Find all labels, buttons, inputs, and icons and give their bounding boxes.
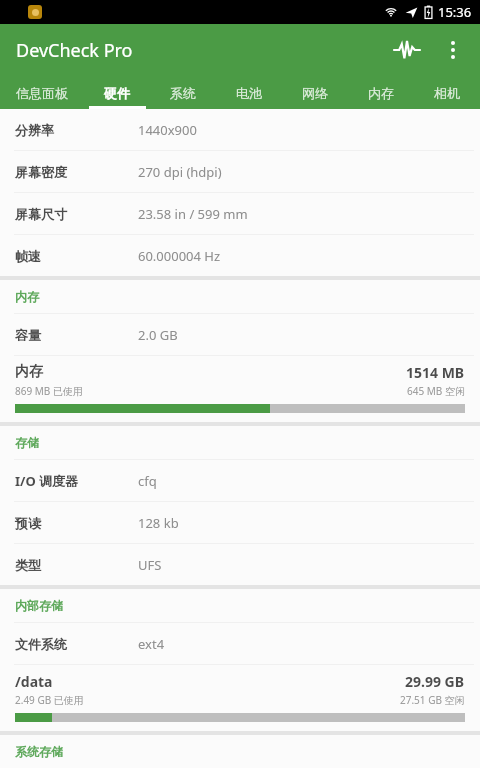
- staticText: 270 dpi (hdpi): [138, 163, 222, 181]
- staticText: 1514 MB: [406, 363, 465, 382]
- staticText: 屏幕尺寸: [15, 206, 67, 222]
- staticText: 内部存储: [15, 598, 63, 613]
- button[interactable]: 硬件: [84, 76, 150, 109]
- button[interactable]: 网络: [282, 76, 348, 109]
- staticText: 系统存储: [15, 744, 63, 759]
- staticText: 29.99 GB: [405, 672, 465, 691]
- staticText: 27.51 GB 空闲: [400, 693, 465, 707]
- button[interactable]: 帧速: [0, 235, 480, 276]
- staticText: ext4: [138, 635, 165, 653]
- button[interactable]: 容量: [0, 314, 480, 355]
- button[interactable]: 内存: [0, 356, 480, 422]
- button[interactable]: Monitor: [384, 27, 430, 73]
- staticText: 内存: [15, 289, 39, 304]
- staticText: 1440x900: [138, 121, 197, 139]
- staticText: 文件系统: [15, 636, 67, 652]
- staticText: 23.58 in / 599 mm: [138, 205, 248, 223]
- button[interactable]: 信息面板: [0, 76, 84, 109]
- staticText: 分辨率: [15, 122, 54, 138]
- button[interactable]: More options: [430, 27, 476, 73]
- staticText: 内存: [15, 363, 43, 381]
- staticText: /data: [15, 672, 53, 691]
- staticText: 预读: [15, 515, 41, 531]
- staticText: 电池: [236, 85, 262, 101]
- button[interactable]: 相机: [414, 76, 480, 109]
- button[interactable]: 电池: [216, 76, 282, 109]
- staticText: 相机: [434, 85, 460, 101]
- button[interactable]: 系统: [150, 76, 216, 109]
- staticText: 硬件: [104, 85, 130, 101]
- staticText: 类型: [15, 557, 41, 573]
- button[interactable]: 预读: [0, 502, 480, 543]
- button[interactable]: 文件系统: [0, 623, 480, 664]
- staticText: 帧速: [15, 248, 41, 264]
- staticText: DevCheck Pro: [16, 38, 133, 63]
- staticText: 60.000004 Hz: [138, 247, 221, 265]
- button[interactable]: 屏幕尺寸: [0, 193, 480, 234]
- staticText: 信息面板: [16, 85, 68, 101]
- staticText: 网络: [302, 85, 328, 101]
- staticText: 869 MB 已使用: [15, 384, 83, 398]
- staticText: 屏幕密度: [15, 164, 67, 180]
- button[interactable]: I/O 调度器: [0, 460, 480, 501]
- button[interactable]: 分辨率: [0, 109, 480, 150]
- staticText: 系统: [170, 85, 196, 101]
- staticText: 128 kb: [138, 514, 179, 532]
- staticText: 2.49 GB 已使用: [15, 693, 84, 707]
- button[interactable]: 类型: [0, 544, 480, 585]
- staticText: 容量: [15, 327, 41, 343]
- staticText: 645 MB 空闲: [407, 384, 465, 398]
- staticText: 内存: [368, 85, 394, 101]
- staticText: cfq: [138, 472, 157, 490]
- staticText: 2.0 GB: [138, 326, 178, 344]
- button[interactable]: /data: [0, 665, 480, 731]
- button[interactable]: 内存: [348, 76, 414, 109]
- button[interactable]: 屏幕密度: [0, 151, 480, 192]
- staticText: UFS: [138, 556, 162, 574]
- staticText: 15:36: [438, 3, 472, 21]
- staticText: I/O 调度器: [15, 472, 79, 490]
- staticText: 存储: [15, 435, 39, 450]
